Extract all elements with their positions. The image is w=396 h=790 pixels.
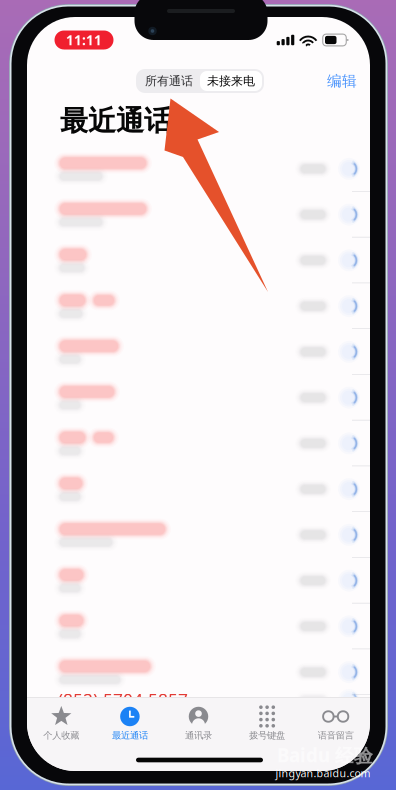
staticText: 最近通话: [112, 730, 148, 741]
staticText: 11:11: [66, 31, 102, 49]
staticText: 语音留言: [318, 730, 354, 741]
staticText: 通讯录: [185, 730, 212, 741]
button[interactable]: [27, 283, 370, 329]
button[interactable]: [27, 375, 370, 421]
button[interactable]: 所有通话: [136, 69, 264, 93]
button[interactable]: 拨号键盘: [233, 706, 301, 741]
button[interactable]: [27, 466, 370, 512]
staticText: Baidu 经验: [277, 743, 373, 767]
button[interactable]: 编辑: [318, 66, 366, 96]
button[interactable]: [27, 649, 370, 695]
staticText: 未接来电: [207, 74, 255, 88]
button[interactable]: 最近通话: [96, 706, 164, 741]
staticText: 所有通话: [145, 74, 193, 88]
staticText: 最近通话: [60, 104, 172, 138]
button[interactable]: [27, 603, 370, 649]
staticText: 拨号键盘: [249, 730, 285, 741]
button[interactable]: 通讯录: [164, 706, 233, 741]
button[interactable]: [27, 192, 370, 238]
button[interactable]: (852) 5704 5857: [27, 690, 370, 710]
button[interactable]: 语音留言: [301, 706, 370, 741]
button[interactable]: [27, 329, 370, 375]
button[interactable]: [27, 420, 370, 466]
button[interactable]: [27, 146, 370, 192]
staticText: (852) 5704 5857: [58, 688, 188, 711]
button[interactable]: 个人收藏: [27, 706, 96, 741]
button[interactable]: [27, 558, 370, 604]
staticText: jingyan.baidu.com: [275, 766, 370, 780]
staticText: 编辑: [327, 72, 357, 90]
staticText: 个人收藏: [43, 730, 79, 741]
button[interactable]: [27, 237, 370, 283]
button[interactable]: [27, 512, 370, 558]
